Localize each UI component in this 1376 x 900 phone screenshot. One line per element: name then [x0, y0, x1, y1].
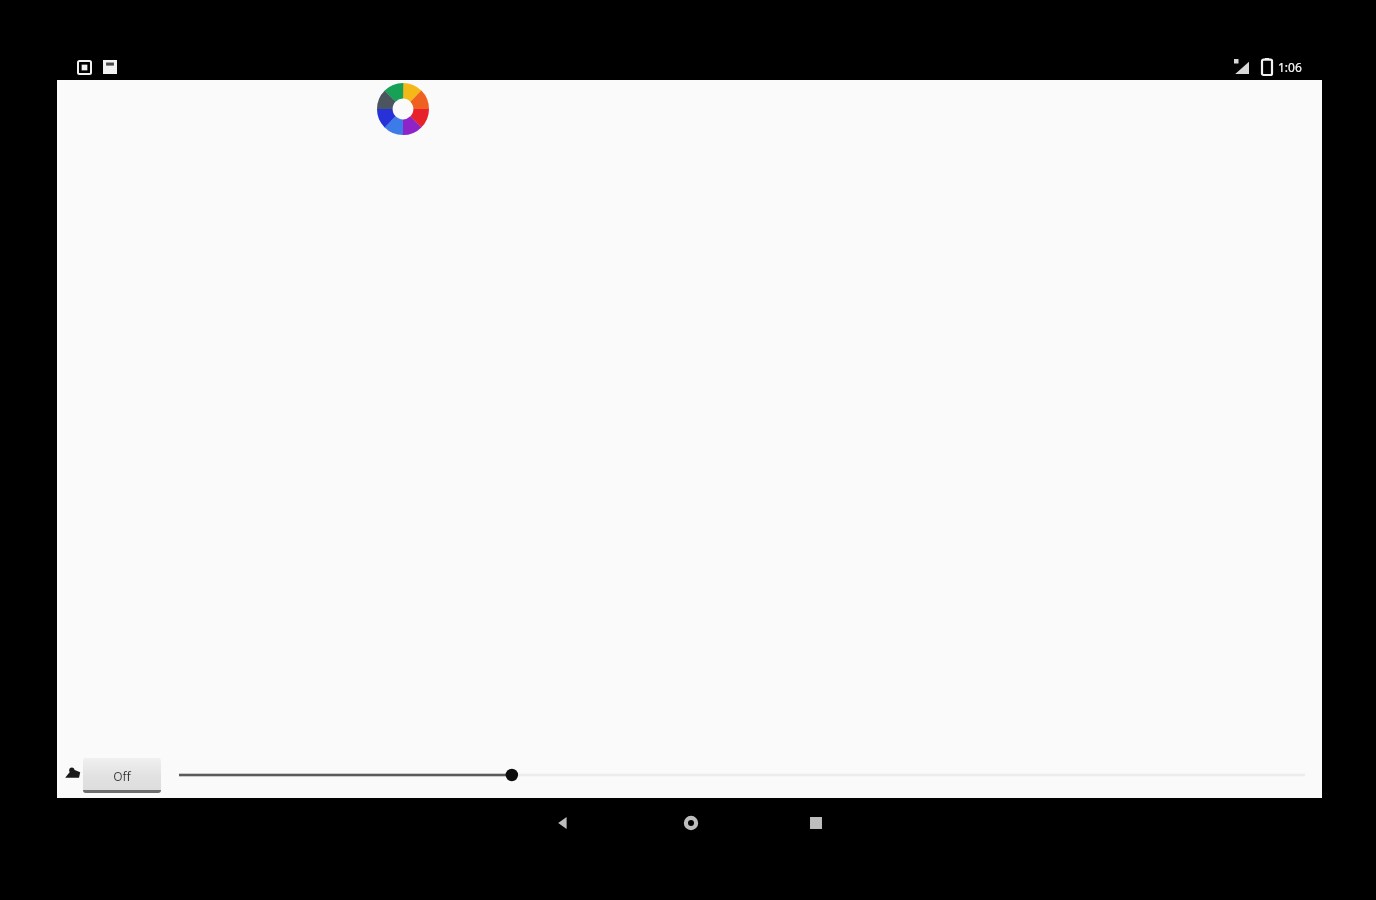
staticText: 1:06 [1278, 59, 1302, 75]
button[interactable]: Recent apps [803, 810, 829, 836]
button[interactable]: Home [676, 808, 706, 838]
button[interactable]: Brightness [179, 762, 1305, 788]
other: Brush [63, 763, 83, 783]
button[interactable]: Pick colour [377, 83, 429, 135]
button[interactable]: Back [548, 808, 578, 838]
staticText: Off [113, 768, 131, 784]
button[interactable]: Off [83, 758, 161, 793]
